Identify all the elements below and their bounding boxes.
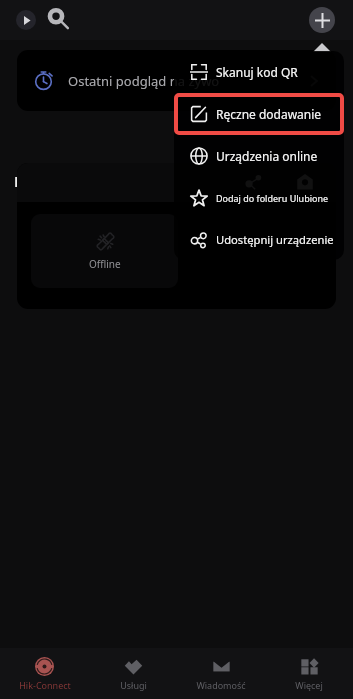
button[interactable]: Urządzenia online: [174, 135, 344, 177]
button[interactable]: Add device: [309, 7, 335, 33]
staticText: Urządzenia online: [216, 148, 318, 164]
button[interactable]: Wiadomość: [177, 648, 265, 699]
button[interactable]: Usługi: [89, 648, 177, 699]
button[interactable]: Udostępnij urządzenie: [174, 219, 344, 260]
staticText: Dodaj do folderu Ulubione: [216, 192, 329, 204]
staticText: Więcej: [295, 679, 323, 691]
button[interactable]: Share device: [243, 172, 263, 192]
staticText: Skanuj kod QR: [216, 64, 298, 80]
staticText: Wiadomość: [196, 679, 246, 691]
button[interactable]: Hik-Connect: [0, 648, 89, 699]
button[interactable]: Dodaj do folderu Ulubione: [174, 177, 344, 219]
button[interactable]: Device settings: [295, 172, 315, 192]
staticText: Moje urządzenia: [14, 171, 137, 191]
button[interactable]: Search: [43, 4, 71, 32]
staticText: Ostatni podgląd na żywo: [68, 72, 220, 90]
staticText: Offline: [89, 257, 121, 271]
staticText: Udostępnij urządzenie: [216, 232, 334, 247]
button[interactable]: Ręczne dodawanie: [174, 93, 344, 135]
staticText: Hik-Connect: [19, 679, 71, 691]
button[interactable]: Ostatni podgląd na żywo: [17, 50, 336, 111]
button[interactable]: Offline: [31, 214, 178, 288]
button[interactable]: Skanuj kod QR: [174, 51, 344, 93]
button[interactable]: Live preview: [16, 10, 36, 30]
staticText: Usługi: [120, 679, 147, 691]
staticText: Ręczne dodawanie: [216, 106, 322, 122]
button[interactable]: Więcej: [265, 648, 353, 699]
